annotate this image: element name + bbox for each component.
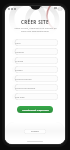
button[interactable]: Maintenant s'abonner (17, 106, 53, 113)
staticText: Site web (15, 95, 25, 98)
staticText: Nom (15, 41, 21, 44)
button[interactable]: Contact phone (12, 75, 58, 82)
staticText: Slogan (15, 68, 23, 71)
staticText: Maintenant s'abonner (22, 108, 49, 111)
button[interactable]: Nom (12, 39, 58, 46)
button[interactable]: Site web (12, 93, 58, 100)
button[interactable]: Slogan (12, 66, 58, 73)
button[interactable]: Publier (24, 129, 46, 134)
staticText: Publier (31, 130, 39, 133)
button[interactable]: Activité (12, 57, 58, 64)
button[interactable]: Adresse (12, 48, 58, 55)
staticText: votre site web/application (21, 30, 49, 33)
button[interactable]: Contact whatsapp (12, 84, 58, 91)
staticText: Contact phone (15, 77, 32, 80)
staticText: Activité (15, 59, 24, 62)
staticText: Saisir le nom, l'adresse et le numéro de (14, 27, 57, 30)
staticText: CRÉER SITE (21, 19, 49, 25)
staticText: Adresse (15, 50, 24, 53)
staticText: Contact whatsapp (15, 86, 36, 89)
